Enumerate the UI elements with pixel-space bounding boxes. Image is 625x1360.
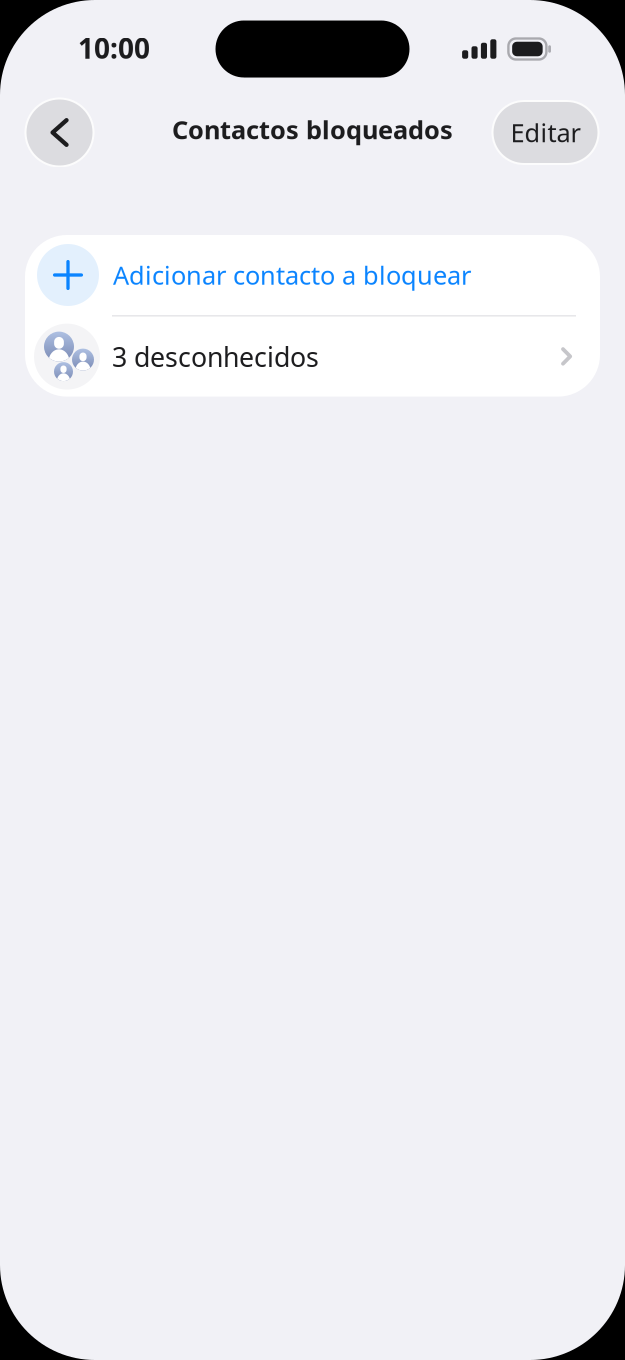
- staticText: 10:00: [78, 29, 150, 67]
- staticText: Adicionar contacto a bloquear: [113, 258, 471, 292]
- button[interactable]: Back: [25, 98, 94, 167]
- button[interactable]: Editar: [492, 100, 599, 164]
- button[interactable]: Adicionar contacto a bloquear: [25, 235, 600, 315]
- staticText: Editar: [510, 116, 580, 149]
- staticText: 3 desconhecidos: [112, 339, 319, 374]
- staticText: Contactos bloqueados: [172, 113, 453, 146]
- button[interactable]: 3 desconhecidos: [25, 317, 600, 397]
